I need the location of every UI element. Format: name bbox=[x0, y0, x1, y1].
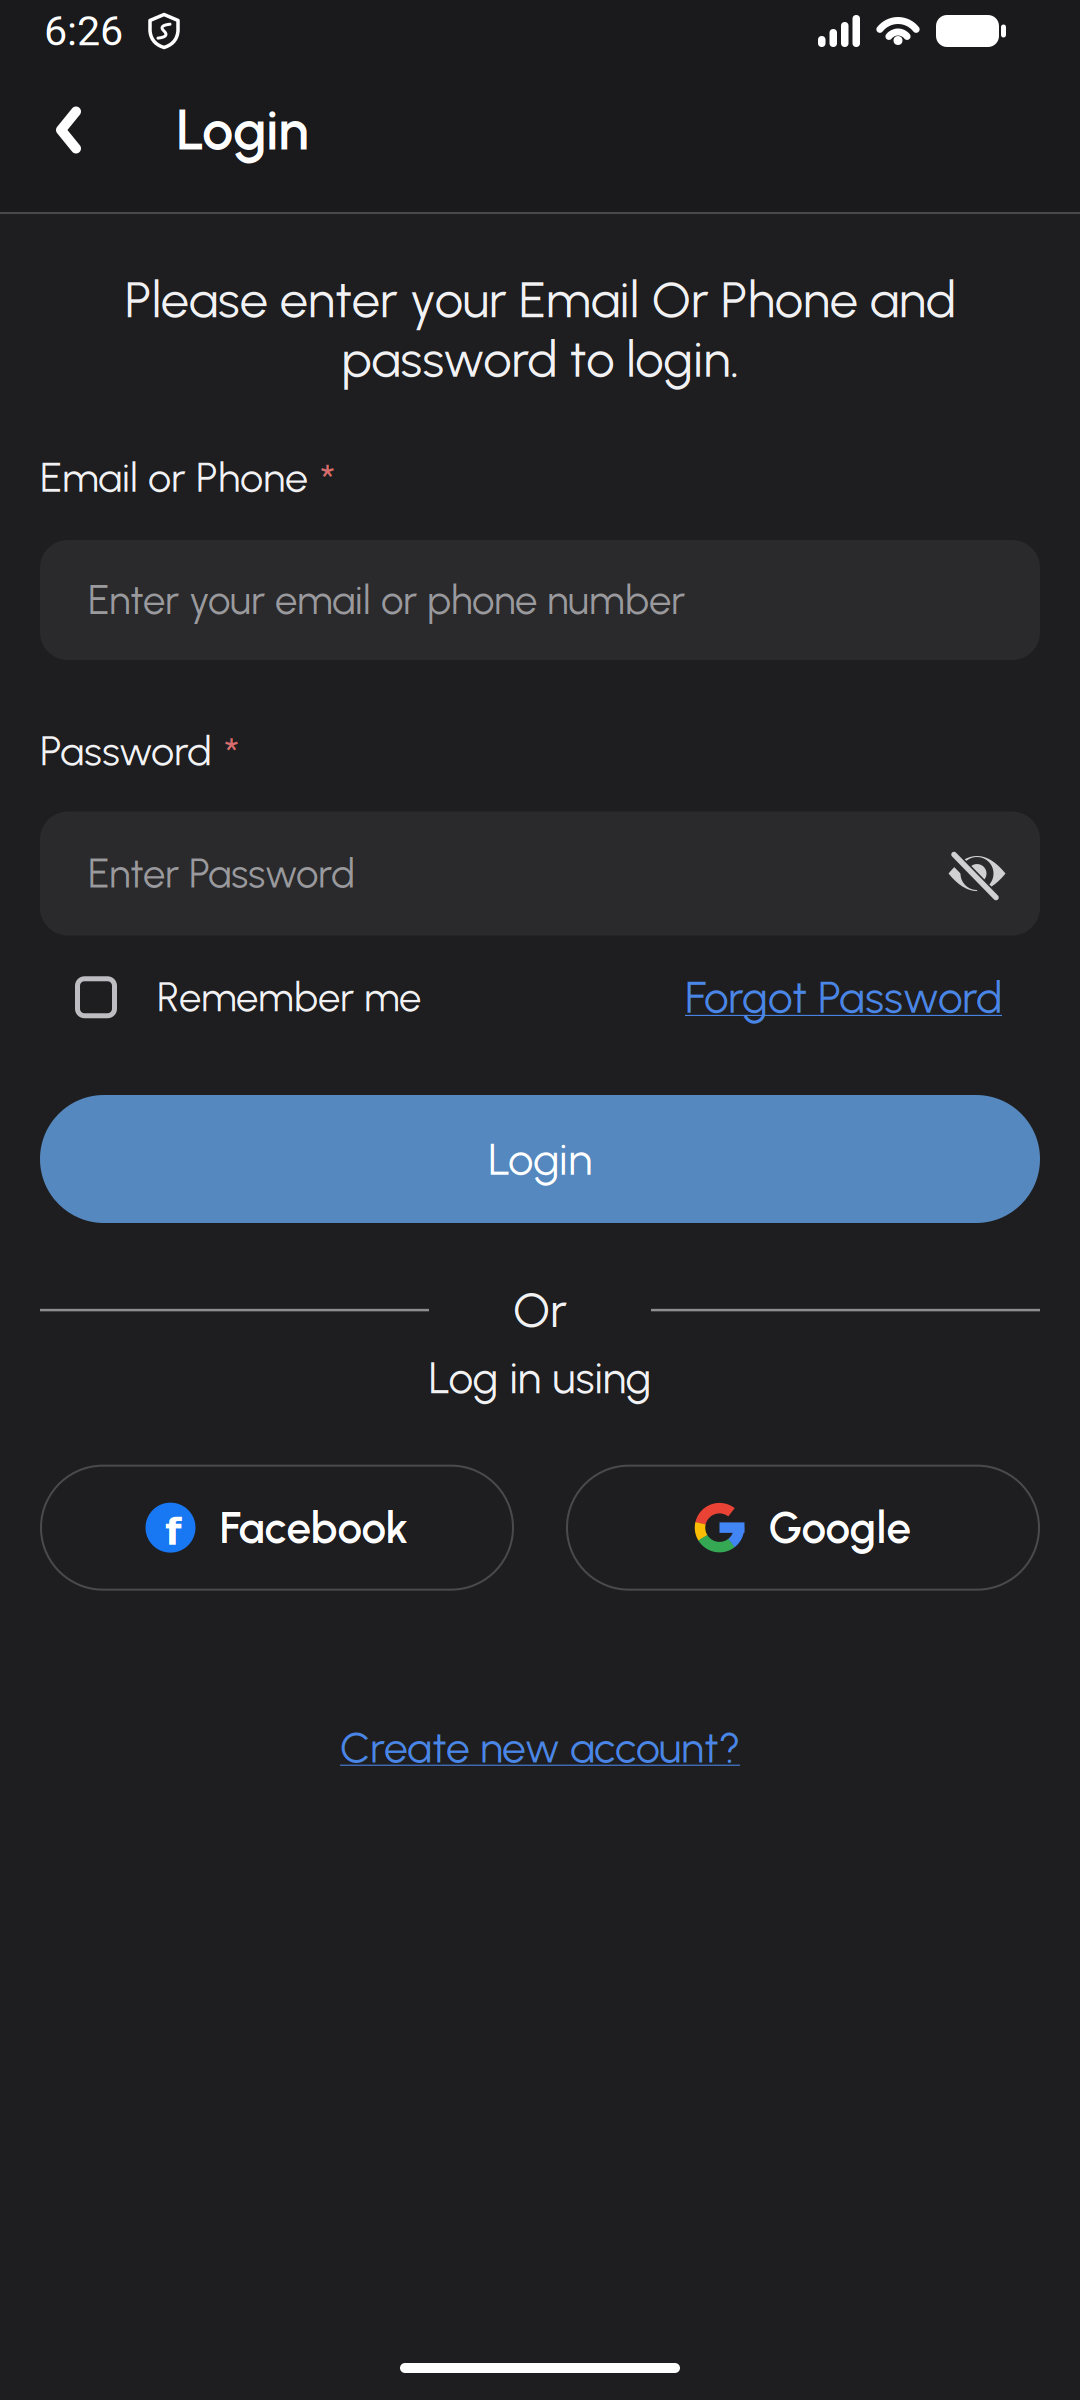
staticText: Enter your email or phone number bbox=[88, 577, 685, 623]
button[interactable]: Forgot Password bbox=[685, 971, 1002, 1023]
button[interactable]: Remember me bbox=[75, 974, 421, 1021]
staticText: Create new account? bbox=[340, 1723, 740, 1772]
staticText: Remember me bbox=[157, 974, 421, 1021]
button[interactable]: Login bbox=[40, 1095, 1040, 1223]
button[interactable]: Create new account? bbox=[340, 1723, 740, 1772]
staticText: Email or Phone bbox=[40, 453, 308, 501]
button[interactable]: Google bbox=[566, 1465, 1040, 1591]
staticText: 6:26 bbox=[44, 7, 123, 55]
staticText: Please enter your Email Or Phone and pas… bbox=[124, 270, 955, 389]
staticText: * bbox=[320, 455, 336, 506]
staticText: Login bbox=[488, 1132, 592, 1185]
button[interactable]: Show password bbox=[947, 843, 1040, 903]
button[interactable]: Back bbox=[0, 55, 121, 205]
staticText: * bbox=[224, 728, 240, 779]
staticText: Forgot Password bbox=[685, 971, 1002, 1023]
staticText: Google bbox=[768, 1502, 911, 1553]
staticText: Enter Password bbox=[88, 850, 355, 897]
button[interactable]: f bbox=[40, 1465, 514, 1591]
staticText: Login bbox=[176, 97, 309, 163]
staticText: Log in using bbox=[428, 1352, 651, 1404]
staticText: Facebook bbox=[219, 1502, 408, 1553]
staticText: Or bbox=[513, 1282, 567, 1338]
staticText: Password bbox=[40, 727, 212, 775]
staticText: f bbox=[165, 1509, 182, 1554]
